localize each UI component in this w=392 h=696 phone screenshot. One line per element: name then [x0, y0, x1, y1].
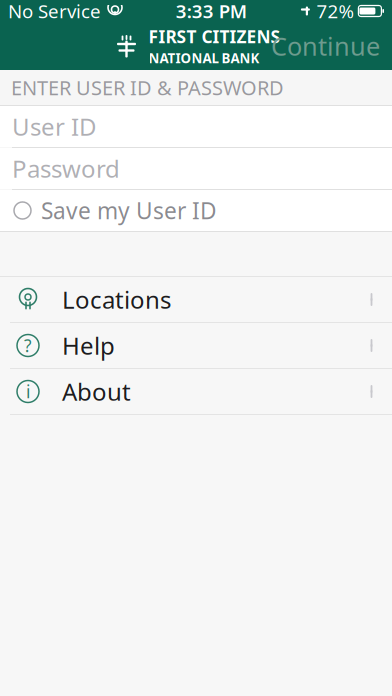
staticText: Help [62, 330, 115, 361]
staticText: Continue [271, 29, 380, 63]
staticText: FIRST CITIZENS [148, 25, 280, 48]
staticText: Locations [62, 284, 171, 315]
button[interactable]: Locations [0, 277, 392, 323]
staticText: ? [24, 334, 32, 357]
staticText: Password [12, 153, 120, 184]
button[interactable]: i [0, 369, 392, 415]
staticText: User ID [12, 111, 97, 142]
staticText: About [62, 376, 131, 407]
staticText: NATIONAL BANK [148, 49, 259, 67]
staticText: ENTER USER ID & PASSWORD [11, 74, 284, 101]
staticText: Save my User ID [41, 195, 217, 225]
button[interactable]: Save my User ID [0, 190, 392, 232]
staticText: 72% [316, 0, 354, 23]
button[interactable]: ? [0, 323, 392, 369]
staticText: i [26, 380, 30, 403]
staticText: No Service [8, 0, 101, 23]
staticText: 3:33 PM [176, 0, 247, 23]
button[interactable]: Continue [259, 21, 392, 71]
